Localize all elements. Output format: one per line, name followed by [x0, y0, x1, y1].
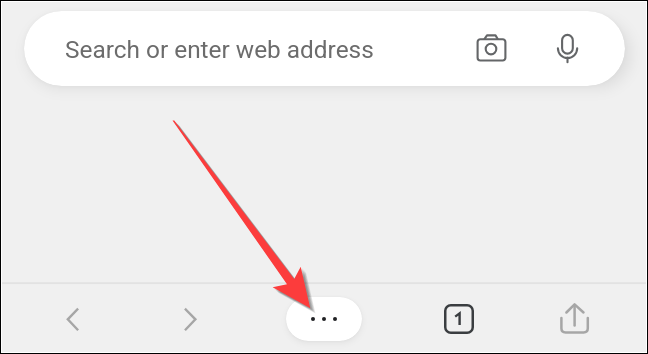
button[interactable]: Back — [46, 298, 102, 344]
button[interactable]: Share — [547, 297, 603, 343]
button[interactable]: Voice search — [546, 27, 590, 71]
button[interactable]: More options — [286, 297, 362, 341]
button[interactable]: Forward — [165, 298, 221, 344]
button[interactable]: Search with camera — [470, 27, 514, 71]
button[interactable]: Tabs, 1 open — [430, 295, 486, 341]
button[interactable]: Search or enter web address — [24, 11, 625, 86]
staticText: Search or enter web address — [65, 35, 374, 64]
